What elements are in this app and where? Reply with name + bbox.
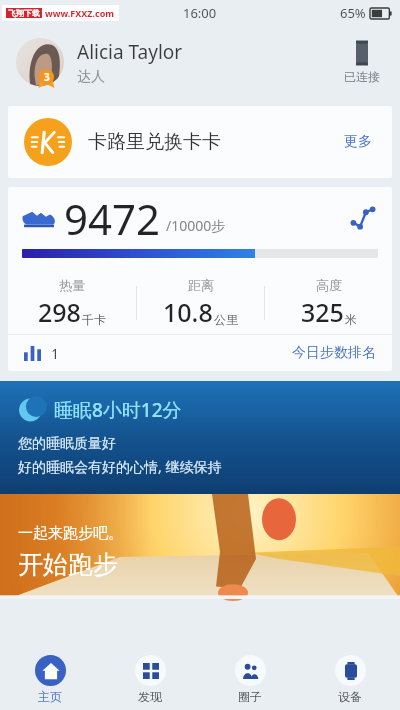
staticText: 睡眠8小时12分 — [54, 397, 182, 423]
button[interactable]: 圈子 — [200, 648, 300, 710]
staticText: 298 — [38, 295, 81, 329]
staticText: 米 — [345, 312, 357, 327]
button[interactable]: Step trend chart — [348, 203, 378, 233]
staticText: 3 — [44, 70, 50, 84]
staticText: 已连接 — [344, 69, 380, 84]
staticText: 发现 — [138, 689, 162, 704]
staticText: 飞翔下载 — [8, 8, 40, 18]
staticText: 圈子 — [238, 689, 262, 704]
staticText: 325 — [301, 295, 344, 329]
staticText: 16:00 — [183, 4, 217, 22]
button[interactable]: 热量 — [8, 272, 136, 334]
staticText: 千卡 — [82, 312, 106, 327]
staticText: 您的睡眠质量好 — [18, 435, 116, 453]
button[interactable]: 距离 — [137, 272, 264, 334]
staticText: /10000步 — [166, 216, 226, 235]
staticText: 公里 — [214, 312, 238, 327]
staticText: 热量 — [59, 277, 85, 293]
button[interactable]: 9472 — [8, 187, 392, 249]
button[interactable]: 更多 — [340, 129, 376, 155]
button[interactable]: 一起来跑步吧。 — [0, 494, 400, 599]
button[interactable]: 卡路里兑换卡卡 — [8, 106, 392, 178]
staticText: www.FXXZ.com — [45, 7, 115, 19]
staticText: 距离 — [188, 277, 214, 293]
staticText: 开始跑步 — [18, 549, 118, 580]
staticText: 9472 — [64, 190, 161, 247]
button[interactable]: 1 — [8, 335, 392, 371]
staticText: 10.8 — [163, 295, 213, 329]
button[interactable]: 发现 — [100, 648, 200, 710]
staticText: 设备 — [338, 689, 362, 704]
staticText: 65% — [340, 4, 366, 22]
button[interactable]: 3 — [0, 26, 400, 98]
staticText: 一起来跑步吧。 — [18, 524, 123, 543]
staticText: 主页 — [38, 689, 62, 704]
staticText: Alicia Taylor — [77, 39, 183, 65]
staticText: 达人 — [77, 68, 105, 86]
button[interactable]: 睡眠8小时12分 — [0, 381, 400, 494]
staticText: 1 — [51, 344, 60, 363]
staticText: 好的睡眠会有好的心情, 继续保持 — [18, 457, 222, 476]
button[interactable]: Device connected — [340, 36, 384, 88]
staticText: 今日步数排名 — [292, 344, 376, 362]
button[interactable]: 设备 — [300, 648, 400, 710]
staticText: 高度 — [316, 277, 342, 293]
button[interactable]: 高度 — [265, 272, 392, 334]
button[interactable]: 主页 — [0, 648, 100, 710]
staticText: 卡路里兑换卡卡 — [88, 130, 221, 154]
